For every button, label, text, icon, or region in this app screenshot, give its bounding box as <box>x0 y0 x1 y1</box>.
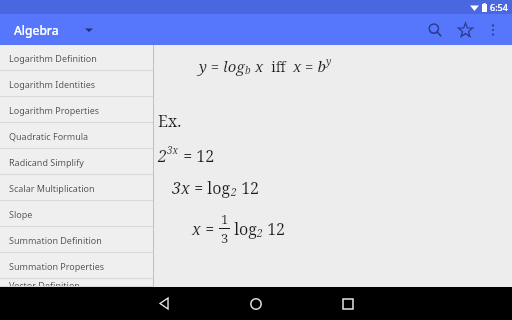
staticText: b <box>245 63 251 77</box>
staticText: 3x <box>167 143 179 157</box>
staticText: Radicand Simplify <box>9 156 84 168</box>
staticText: x <box>251 56 264 76</box>
staticText: 1 <box>221 210 229 228</box>
staticText: Logarithm Identities <box>9 78 96 90</box>
button[interactable]: Summation Definition <box>0 227 153 253</box>
button[interactable]: Slope <box>0 201 153 227</box>
button[interactable]: Search <box>420 15 450 45</box>
button[interactable]: Home <box>228 287 284 320</box>
button[interactable]: Radicand Simplify <box>0 149 153 175</box>
button[interactable]: Logarithm Identities <box>0 71 153 97</box>
button[interactable]: Logarithm Definition <box>0 45 153 71</box>
staticText: log <box>230 218 257 240</box>
button[interactable]: More options <box>480 17 506 43</box>
staticText: y = log <box>199 56 245 76</box>
staticText: Logarithm Properties <box>9 104 100 116</box>
staticText: = 12 <box>179 145 215 167</box>
staticText: Vector Definition <box>9 279 80 287</box>
button[interactable]: Logarithm Properties <box>0 97 153 123</box>
staticText: iff <box>264 57 293 76</box>
staticText: Ex. <box>158 110 182 132</box>
button[interactable]: Summation Properties <box>0 253 153 279</box>
staticText: 6:54 <box>490 1 508 13</box>
staticText: = log <box>190 177 231 199</box>
staticText: 3 <box>221 229 229 247</box>
button[interactable]: Recent apps <box>320 287 376 320</box>
staticText: Quadratic Formula <box>9 130 89 142</box>
staticText: 12 <box>237 177 260 199</box>
staticText: x <box>192 218 201 240</box>
staticText: 3x <box>172 177 190 199</box>
staticText: = <box>201 218 219 240</box>
button[interactable]: Bookmark <box>450 15 480 45</box>
staticText: Scalar Multiplication <box>9 182 95 194</box>
staticText: 12 <box>263 218 286 240</box>
staticText: 2 <box>231 185 237 199</box>
button[interactable]: Quadratic Formula <box>0 123 153 149</box>
staticText: 2 <box>257 226 263 240</box>
button[interactable]: Algebra <box>14 22 93 38</box>
staticText: 2 <box>158 145 167 167</box>
staticText: Summation Definition <box>9 234 102 246</box>
button[interactable]: Scalar Multiplication <box>0 175 153 201</box>
staticText: Algebra <box>14 22 59 38</box>
staticText: Logarithm Definition <box>9 52 97 64</box>
staticText: Slope <box>9 208 33 220</box>
button[interactable]: Vector Definition <box>0 279 153 287</box>
staticText: x = b <box>293 56 326 76</box>
button[interactable]: Back <box>136 287 192 320</box>
staticText: Summation Properties <box>9 260 105 272</box>
staticText: y <box>326 54 332 68</box>
